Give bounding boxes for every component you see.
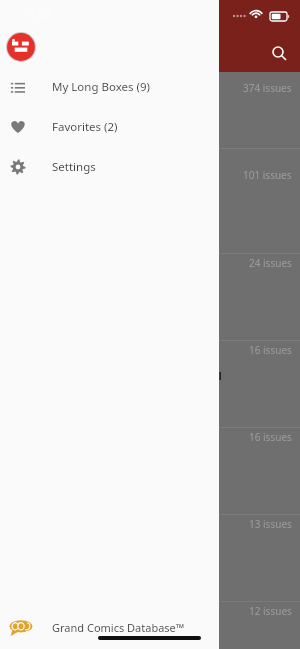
- staticText: 13 issues: [249, 517, 292, 531]
- staticText: 24 issues: [249, 256, 292, 270]
- button[interactable]: Favorites (2): [0, 112, 219, 142]
- button[interactable]: Settings: [0, 152, 219, 182]
- staticText: 101 issues: [243, 168, 292, 182]
- button[interactable]: Grand Comics Database™: [0, 613, 219, 641]
- staticText: 16 issues: [249, 343, 292, 357]
- staticText: My Long Boxes (9): [52, 79, 150, 95]
- button[interactable]: Search: [261, 35, 295, 69]
- staticText: Grand Comics Database™: [52, 620, 185, 635]
- staticText: al: [212, 368, 222, 383]
- staticText: 16 issues: [249, 430, 292, 444]
- staticText: Settings: [52, 159, 96, 175]
- button[interactable]: My Long Boxes (9): [0, 72, 219, 102]
- button[interactable]: [0, 72, 300, 649]
- staticText: 12 issues: [249, 604, 292, 618]
- staticText: Favorites (2): [52, 119, 118, 135]
- staticText: 374 issues: [243, 81, 292, 95]
